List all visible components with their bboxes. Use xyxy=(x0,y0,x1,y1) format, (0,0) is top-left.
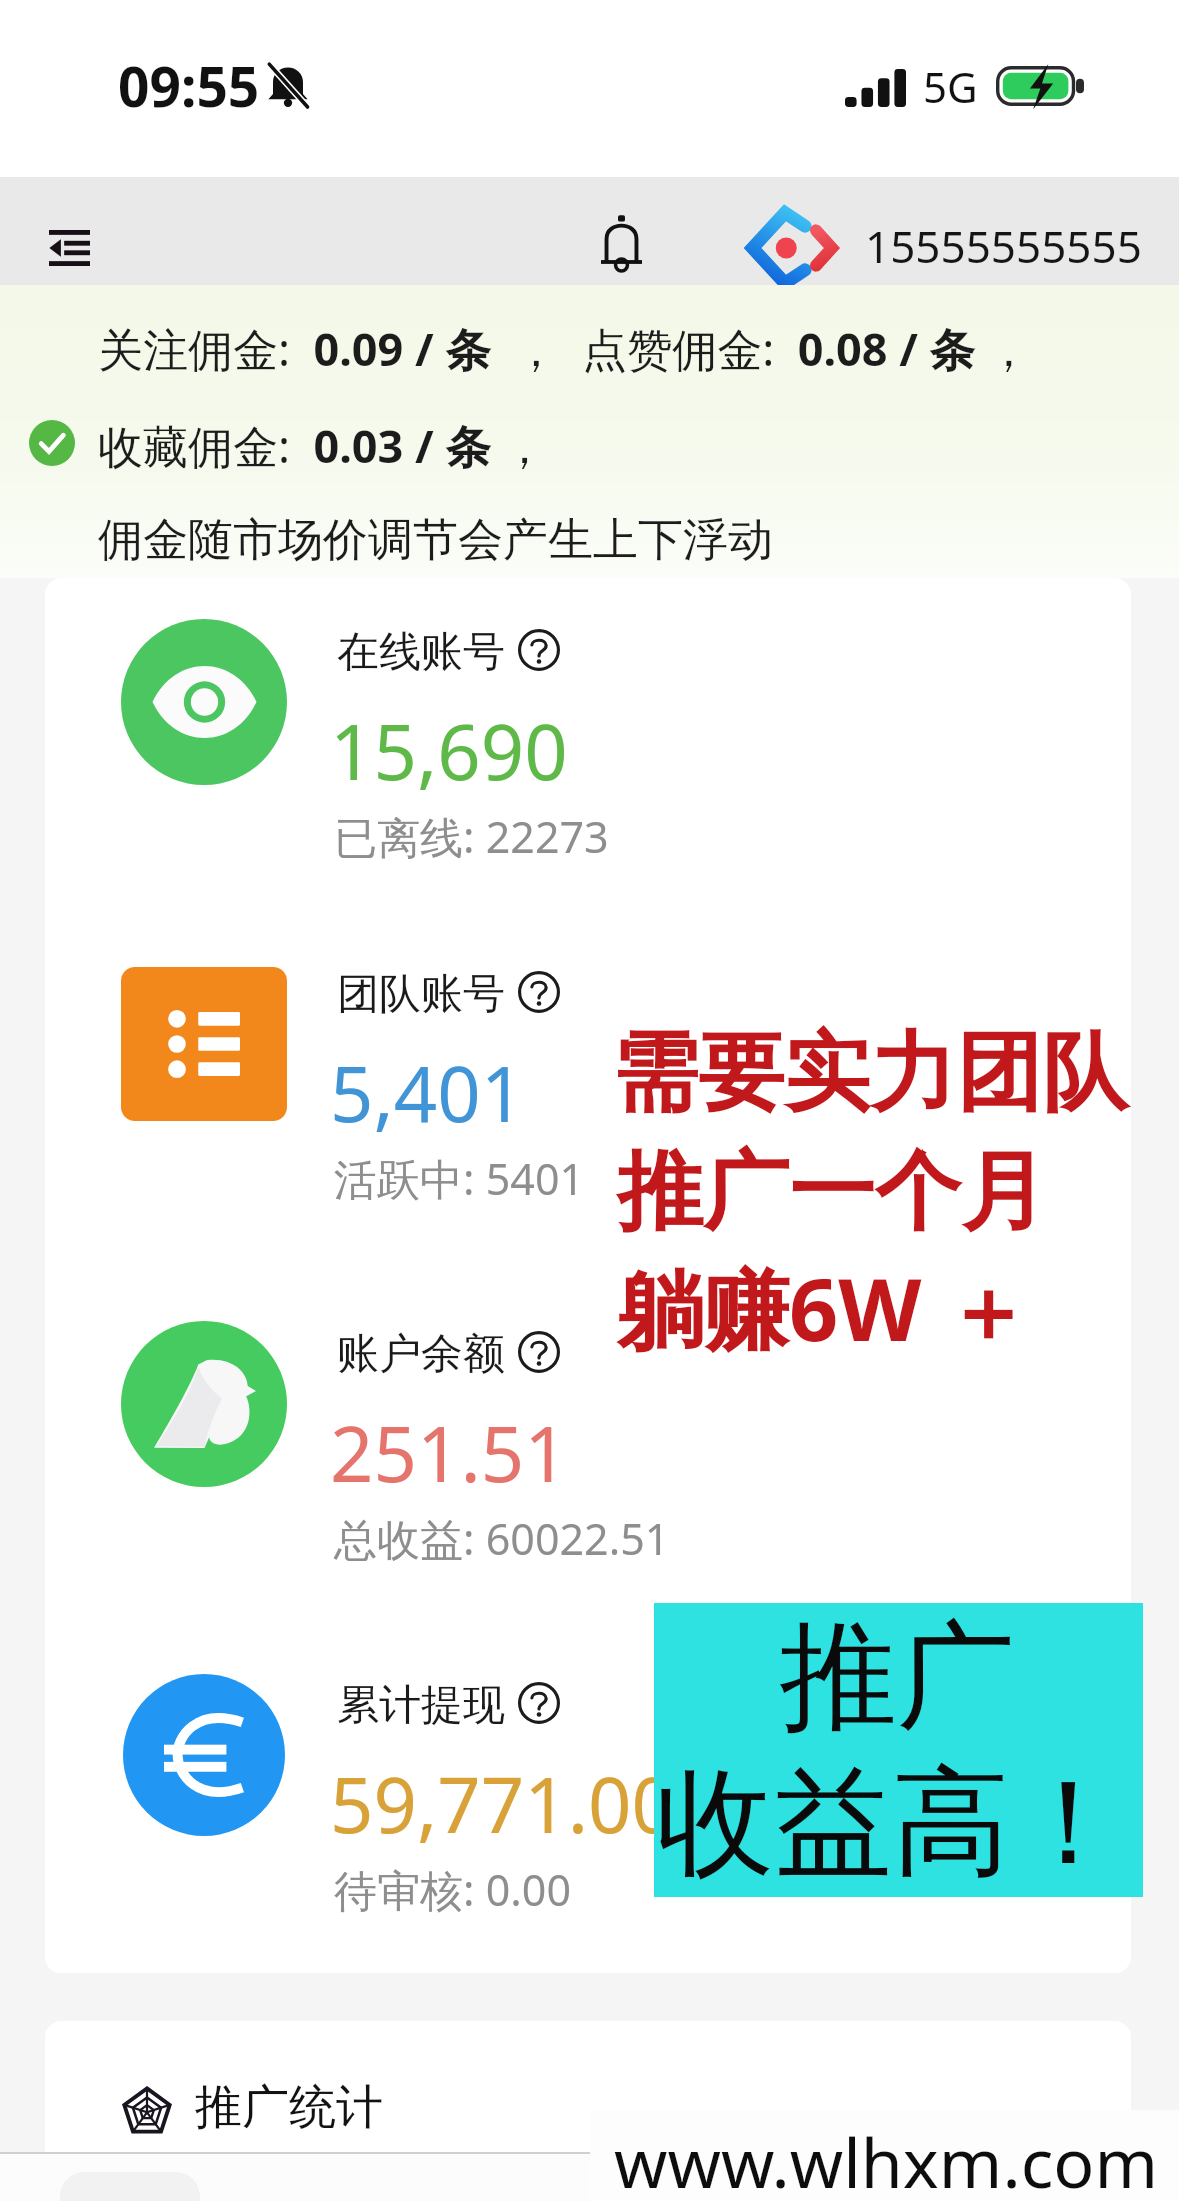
staticText: www.wlhxm.com xyxy=(614,2115,1159,2201)
button[interactable]: 累计提现 xyxy=(45,1645,1131,1877)
button[interactable]: 在线账号 xyxy=(45,592,1131,824)
staticText: 5G xyxy=(923,58,978,115)
staticText: 收益高！ xyxy=(656,1749,1128,1898)
staticText: 收藏佣金: 0.03 / 条 ， xyxy=(98,415,548,476)
staticText: 15555555555 xyxy=(865,216,1142,276)
staticText: 躺赚6W ＋ xyxy=(617,1249,1030,1366)
staticText: 总收益: 60022.51 xyxy=(334,1509,670,1568)
staticText: 5,401 xyxy=(330,1041,525,1145)
staticText: 需要实力团队 xyxy=(612,1019,1128,1127)
staticText: 累计提现 xyxy=(337,1679,505,1732)
staticText: 推广一个月 xyxy=(617,1138,1047,1246)
button[interactable]: 15555555555 xyxy=(745,203,1142,293)
button[interactable]: 账户余额 xyxy=(45,1294,1131,1526)
staticText: 关注佣金: 0.09 / 条 ， 点赞佣金: 0.08 / 条 ， xyxy=(98,318,1032,379)
button[interactable]: Notifications xyxy=(577,195,665,289)
staticText: 在线账号 xyxy=(337,626,505,679)
staticText: 已离线: 22273 xyxy=(334,807,609,866)
staticText: 佣金随市场价调节会产生上下浮动 xyxy=(98,512,773,569)
button[interactable]: 团队账号 xyxy=(45,934,1131,1166)
staticText: 59,771.00 xyxy=(330,1752,676,1856)
staticText: 账户余额 xyxy=(337,1328,505,1381)
button[interactable]: 推广统计 xyxy=(119,2080,383,2139)
staticText: 团队账号 xyxy=(337,968,505,1021)
staticText: 推广 xyxy=(779,1603,1015,1752)
staticText: 待审核: 0.00 xyxy=(334,1860,572,1919)
staticText: 09:55 xyxy=(118,48,260,123)
staticText: 推广统计 xyxy=(195,2078,383,2137)
staticText: 活跃中: 5401 xyxy=(334,1149,585,1208)
staticText: 15,690 xyxy=(330,699,568,803)
button[interactable]: Menu xyxy=(19,200,119,296)
staticText: 251.51 xyxy=(330,1401,568,1505)
